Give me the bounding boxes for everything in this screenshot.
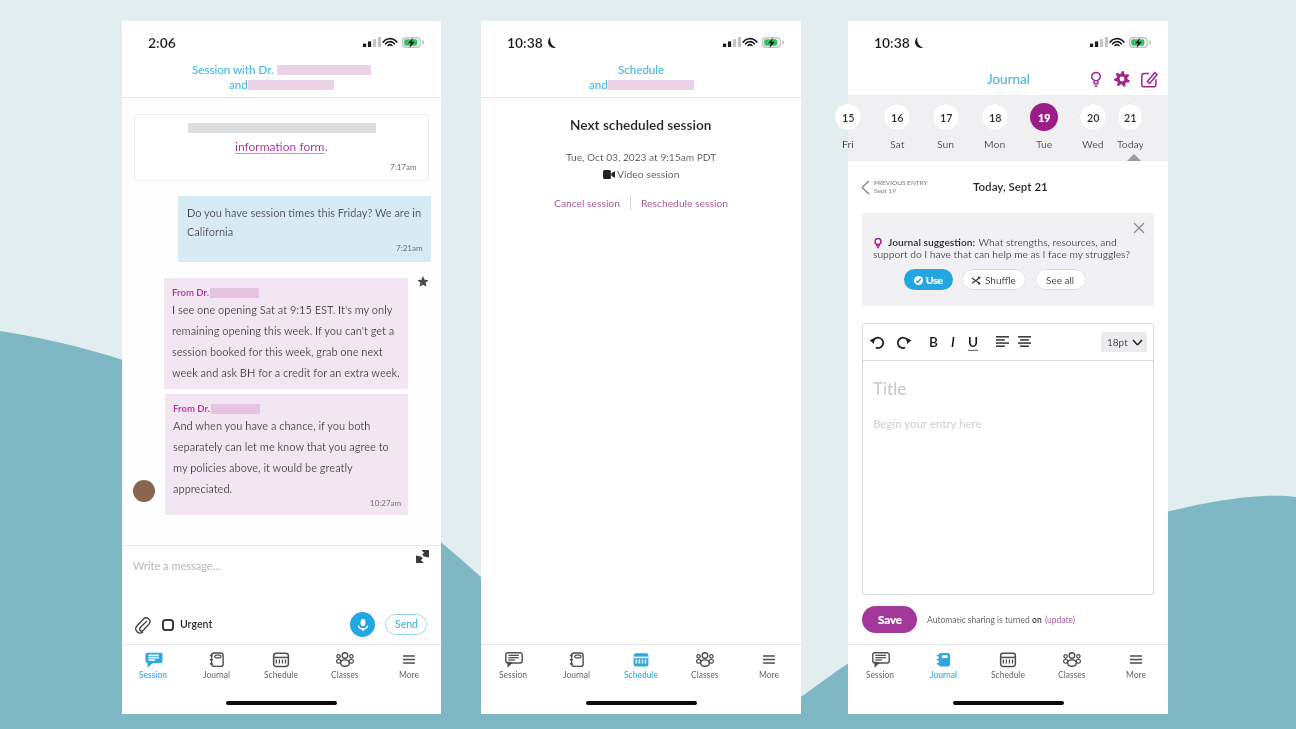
staticText: Classes bbox=[1058, 670, 1086, 680]
button[interactable]: Journal bbox=[545, 645, 609, 687]
button[interactable]: Cancel session bbox=[554, 197, 620, 209]
button[interactable]: B bbox=[929, 334, 938, 350]
staticText: 2:06 bbox=[148, 34, 176, 51]
staticText: Today, Sept 21 bbox=[973, 180, 1048, 194]
staticText: Schedule bbox=[618, 63, 665, 77]
button[interactable]: Starred bbox=[411, 270, 434, 293]
staticText: From Dr. bbox=[173, 403, 211, 415]
staticText: Session bbox=[866, 670, 895, 680]
staticText: Fri bbox=[842, 138, 854, 150]
staticText: Journal suggestion: bbox=[888, 236, 976, 248]
button[interactable]: More bbox=[737, 645, 801, 687]
staticText: Sun bbox=[937, 138, 955, 150]
staticText: Schedule bbox=[264, 670, 298, 680]
button[interactable]: Shuffle bbox=[962, 269, 1026, 290]
staticText: Journal bbox=[203, 670, 231, 680]
button[interactable]: U bbox=[968, 334, 979, 350]
staticText: I see one opening Sat at 9:15 EST. It's … bbox=[172, 303, 402, 379]
button[interactable]: Urgent bbox=[162, 618, 213, 631]
staticText: . bbox=[325, 139, 328, 153]
staticText: Session bbox=[499, 670, 528, 680]
staticText: 10:38 bbox=[874, 34, 910, 51]
button[interactable]: Record voice message bbox=[350, 612, 375, 637]
button[interactable]: Tips bbox=[1089, 71, 1103, 87]
staticText: More bbox=[399, 670, 419, 680]
button[interactable]: Journal bbox=[185, 645, 249, 687]
button[interactable]: Schedule bbox=[249, 645, 313, 687]
button[interactable]: Undo bbox=[871, 335, 885, 349]
staticText: (update) bbox=[1045, 615, 1076, 625]
staticText: Tue, Oct 03, 2023 at 9:15am PDT bbox=[566, 151, 717, 163]
button[interactable]: 21 bbox=[1117, 95, 1143, 161]
button[interactable]: Expand bbox=[416, 550, 429, 563]
staticText: Begin your entry here bbox=[873, 417, 982, 431]
button[interactable]: Align justify bbox=[1018, 335, 1031, 348]
button[interactable]: New entry bbox=[1141, 71, 1157, 87]
staticText: Automatic sharing is turned bbox=[927, 615, 1032, 625]
button[interactable]: Session bbox=[122, 645, 185, 687]
button[interactable]: Dismiss bbox=[1134, 223, 1144, 233]
button[interactable]: Send bbox=[385, 614, 427, 635]
staticText: Journal bbox=[563, 670, 591, 680]
staticText: Session bbox=[139, 670, 168, 680]
staticText: information form bbox=[235, 139, 325, 153]
staticText: Sat bbox=[890, 138, 905, 150]
button[interactable]: More bbox=[1104, 645, 1168, 687]
button[interactable]: Journal bbox=[912, 645, 976, 687]
button[interactable]: 18pt bbox=[1101, 332, 1147, 352]
button[interactable]: Classes bbox=[313, 645, 377, 687]
staticText: 15 bbox=[842, 111, 855, 124]
button[interactable]: Reschedule session bbox=[641, 197, 728, 209]
button[interactable]: Redo bbox=[896, 335, 910, 349]
staticText: 20 bbox=[1087, 111, 1100, 124]
staticText: I bbox=[951, 334, 955, 350]
staticText: Next scheduled session bbox=[570, 117, 712, 133]
button[interactable]: See all bbox=[1035, 269, 1086, 290]
button[interactable]: Session bbox=[848, 645, 912, 687]
staticText: Schedule bbox=[991, 670, 1025, 680]
staticText: Reschedule session bbox=[641, 197, 728, 209]
staticText: From Dr. bbox=[172, 287, 210, 299]
button[interactable]: Session bbox=[481, 645, 545, 687]
button[interactable]: 15 bbox=[823, 95, 872, 161]
staticText: Classes bbox=[331, 670, 359, 680]
staticText: 21 bbox=[1124, 111, 1137, 124]
button[interactable]: 19 bbox=[1019, 95, 1068, 161]
button[interactable]: (update) bbox=[1045, 615, 1076, 625]
button[interactable]: 18 bbox=[970, 95, 1019, 161]
button[interactable]: Save bbox=[862, 606, 917, 633]
button[interactable]: Classes bbox=[673, 645, 737, 687]
staticText: B bbox=[929, 334, 938, 350]
button[interactable]: 16 bbox=[872, 95, 921, 161]
staticText: Write a message... bbox=[133, 559, 221, 572]
button[interactable]: 17 bbox=[921, 95, 970, 161]
staticText: Do you have session times this Friday? W… bbox=[187, 206, 423, 238]
button[interactable]: Use bbox=[904, 269, 953, 290]
staticText: 18pt bbox=[1107, 336, 1128, 348]
staticText: See all bbox=[1046, 274, 1075, 286]
button[interactable]: More bbox=[377, 645, 441, 687]
staticText: Sept 19 bbox=[874, 187, 897, 195]
staticText: Wed bbox=[1082, 138, 1104, 150]
button[interactable]: Attach bbox=[135, 617, 150, 632]
staticText: What strengths, resources, and bbox=[976, 236, 1117, 248]
staticText: Mon bbox=[984, 138, 1006, 150]
staticText: And when you have a chance, if you both … bbox=[173, 419, 402, 495]
staticText: Journal bbox=[987, 71, 1030, 87]
staticText: More bbox=[759, 670, 779, 680]
button[interactable]: Schedule bbox=[976, 645, 1040, 687]
staticText: Tue bbox=[1036, 138, 1053, 150]
button[interactable]: Schedule bbox=[609, 645, 673, 687]
staticText: Urgent bbox=[180, 618, 213, 631]
button[interactable]: Settings bbox=[1114, 71, 1130, 87]
staticText: Video session bbox=[617, 168, 680, 180]
button[interactable]: I bbox=[951, 334, 955, 350]
button[interactable]: Classes bbox=[1040, 645, 1104, 687]
button[interactable]: Align left bbox=[996, 335, 1009, 348]
button[interactable]: 20 bbox=[1068, 95, 1117, 161]
staticText: Save bbox=[878, 613, 902, 627]
staticText: and bbox=[229, 78, 248, 92]
staticText: Classes bbox=[691, 670, 719, 680]
button[interactable]: PREVIOUS ENTRY bbox=[862, 179, 928, 195]
